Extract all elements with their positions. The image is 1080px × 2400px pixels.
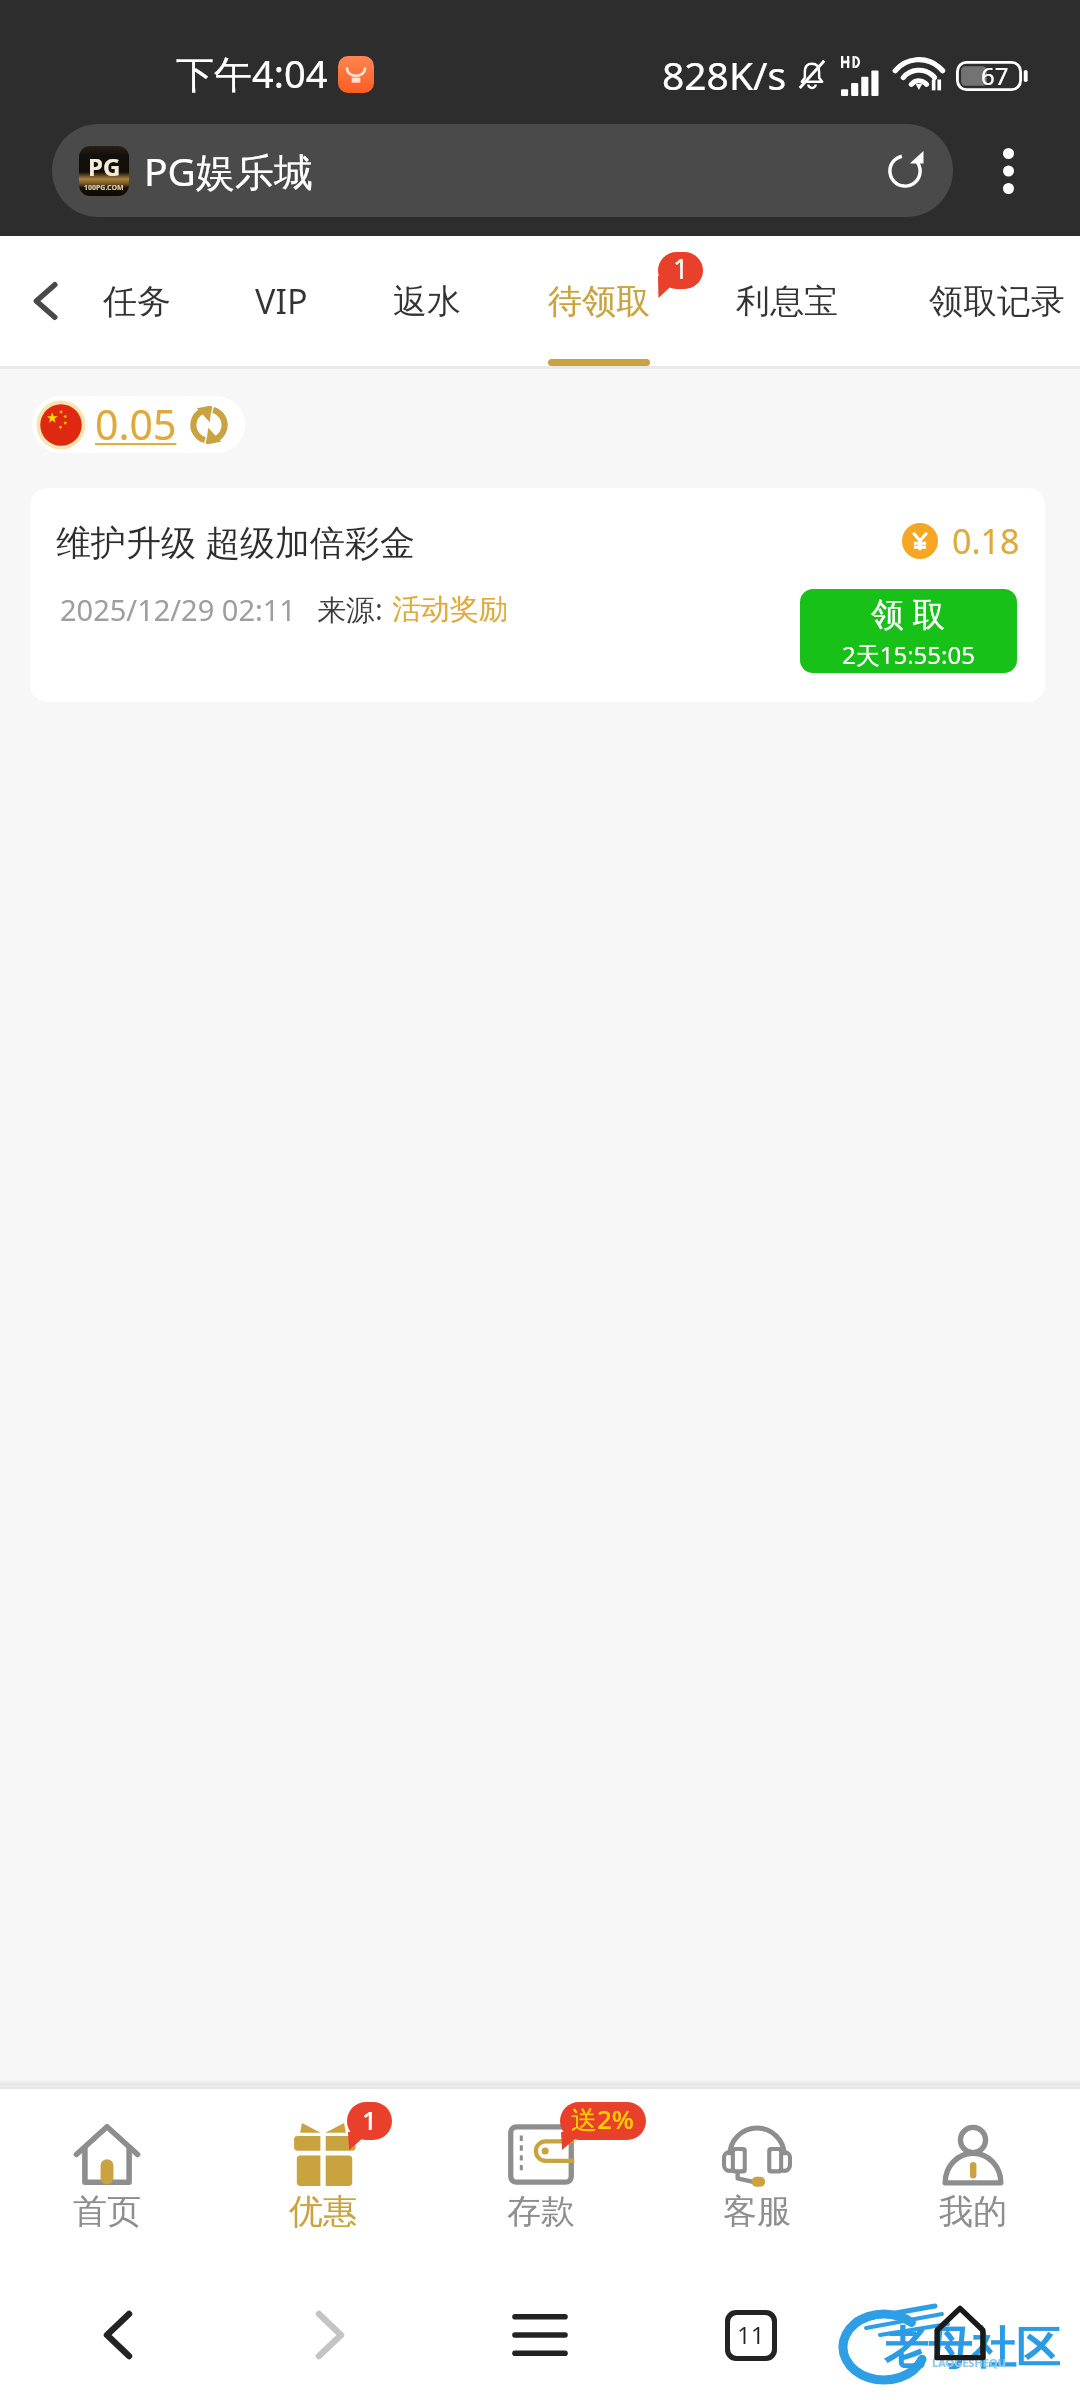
button[interactable]: Menu (495, 2270, 585, 2400)
staticText: 活动奖励 (392, 591, 508, 628)
button[interactable]: PG (52, 124, 953, 217)
button[interactable]: 优惠 (215, 2089, 431, 2270)
staticText: 老母社区 (884, 2321, 1060, 2376)
staticText: 67 (981, 59, 1009, 89)
staticText: 0.18 (952, 518, 1020, 564)
staticText: 2025/12/29 02:11 (60, 590, 296, 629)
staticText: 0.05 (95, 396, 177, 452)
staticText: 返水 (393, 280, 461, 323)
staticText: 1 (673, 252, 689, 287)
staticText: 领取记录 (929, 280, 1065, 323)
staticText: 利息宝 (736, 280, 838, 323)
staticText: 下午4:04 (176, 47, 328, 99)
staticText: 领 取 (871, 591, 946, 636)
staticText: 来源: (317, 589, 383, 629)
staticText: 存款 (507, 2190, 575, 2233)
button[interactable]: Tabs (711, 2270, 791, 2400)
staticText: 任务 (103, 280, 171, 323)
staticText: 首页 (73, 2190, 141, 2233)
button[interactable]: 返水 (377, 236, 477, 366)
staticText: 我的 (939, 2190, 1007, 2233)
staticText: VIP (255, 278, 308, 324)
button[interactable]: VIP (221, 236, 341, 366)
button[interactable]: 任务 (87, 236, 187, 366)
button[interactable]: 0.05 (32, 396, 245, 453)
staticText: PG (88, 150, 121, 183)
staticText: 828K/s (662, 48, 787, 101)
staticText: 待领取 (548, 280, 650, 323)
staticText: 客服 (723, 2190, 791, 2233)
button[interactable]: 领取记录 (919, 236, 1075, 366)
button[interactable]: Back (73, 2270, 163, 2400)
button[interactable]: Back (13, 268, 79, 334)
staticText: 维护升级 超级加倍彩金 (56, 518, 416, 566)
staticText: PG娱乐城 (144, 144, 313, 197)
staticText: 送2% (571, 2102, 635, 2137)
staticText: 11 (737, 2318, 765, 2351)
button[interactable]: 待领取 (539, 236, 659, 366)
button[interactable]: More options (978, 124, 1038, 217)
button[interactable]: 存款 (433, 2089, 649, 2270)
other: Refresh balance (187, 403, 231, 447)
staticText: 1 (362, 2102, 377, 2137)
button[interactable]: 维护升级 超级加倍彩金 (30, 488, 1045, 702)
button[interactable]: 我的 (865, 2089, 1080, 2270)
button[interactable]: 领 取 (800, 589, 1017, 673)
button[interactable]: Forward (285, 2270, 375, 2400)
staticText: LAOGESHEQU (932, 2355, 1007, 2370)
button[interactable]: 客服 (649, 2089, 865, 2270)
staticText: 100PG.COM (84, 183, 124, 193)
button[interactable]: 首页 (0, 2089, 215, 2270)
button[interactable]: 利息宝 (727, 236, 847, 366)
staticText: 2天15:55:05 (842, 638, 975, 671)
other: Reload (881, 147, 929, 195)
staticText: 优惠 (289, 2190, 357, 2233)
